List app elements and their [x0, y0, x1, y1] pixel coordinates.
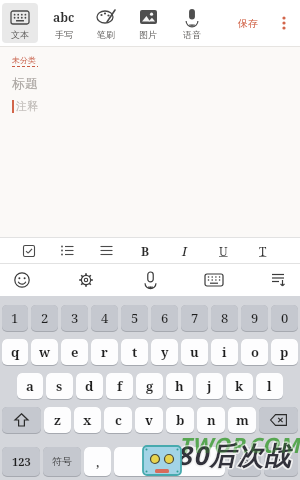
staticText: 6 — [161, 309, 169, 327]
button[interactable]: 8 — [211, 305, 238, 331]
staticText: 8 — [221, 309, 229, 327]
button[interactable] — [48, 238, 87, 263]
staticText: abc — [53, 9, 75, 25]
button[interactable]: q — [2, 339, 28, 365]
button[interactable]: 5 — [121, 305, 148, 331]
staticText: g — [146, 377, 154, 395]
staticText: y — [161, 343, 169, 361]
button[interactable]: 2 — [31, 305, 58, 331]
button[interactable] — [114, 447, 225, 476]
button[interactable] — [10, 238, 48, 263]
button[interactable]: s — [46, 373, 73, 399]
staticText: x — [83, 411, 92, 429]
staticText: 语音 — [183, 29, 201, 40]
staticText: 保存 — [238, 17, 258, 30]
button[interactable]: 保存 — [238, 17, 258, 30]
button[interactable]: t — [121, 339, 148, 365]
button[interactable]: 3 — [61, 305, 88, 331]
button[interactable]: f — [106, 373, 133, 399]
staticText: h — [175, 377, 184, 395]
button[interactable]: abc — [46, 3, 82, 43]
staticText: 1 — [11, 309, 19, 327]
button[interactable]: m — [228, 407, 256, 433]
button[interactable]: n — [197, 407, 225, 433]
button[interactable]: , — [84, 447, 111, 476]
button[interactable] — [70, 264, 102, 296]
staticText: d — [85, 377, 94, 395]
staticText: 文本 — [11, 29, 29, 40]
button[interactable]: o — [241, 339, 268, 365]
staticText: b — [176, 411, 185, 429]
staticText: 9 — [251, 309, 259, 327]
button[interactable] — [264, 447, 298, 476]
button[interactable]: p — [271, 339, 298, 365]
button[interactable]: 文本 — [2, 3, 38, 43]
button[interactable] — [259, 407, 298, 433]
button[interactable]: w — [31, 339, 58, 365]
button[interactable]: x — [74, 407, 101, 433]
button[interactable]: T — [243, 238, 282, 263]
button[interactable]: 语音 — [174, 3, 210, 43]
button[interactable]: g — [136, 373, 163, 399]
staticText: 0 — [281, 309, 289, 327]
button[interactable]: v — [135, 407, 163, 433]
button[interactable]: z — [44, 407, 71, 433]
staticText: j — [207, 377, 212, 395]
staticText: U — [219, 243, 228, 259]
button[interactable] — [2, 407, 41, 433]
staticText: c — [115, 411, 122, 429]
button[interactable]: 9 — [241, 305, 268, 331]
staticText: w — [39, 343, 51, 361]
staticText: 未分类 — [12, 55, 36, 65]
button[interactable]: h — [166, 373, 193, 399]
button[interactable]: 123 — [2, 447, 40, 476]
staticText: 英 — [240, 455, 250, 468]
staticText: f — [117, 377, 123, 395]
button[interactable]: i — [211, 339, 238, 365]
button[interactable]: b — [166, 407, 194, 433]
button[interactable]: e — [61, 339, 88, 365]
button[interactable]: 4 — [91, 305, 118, 331]
staticText: , — [96, 454, 100, 470]
staticText: l — [267, 377, 272, 395]
button[interactable]: 6 — [151, 305, 178, 331]
button[interactable] — [6, 264, 38, 296]
staticText: t — [132, 343, 138, 361]
button[interactable]: r — [91, 339, 118, 365]
button[interactable]: d — [76, 373, 103, 399]
button[interactable]: k — [226, 373, 253, 399]
staticText: 符号 — [52, 455, 72, 468]
staticText: z — [54, 411, 61, 429]
staticText: a — [26, 377, 34, 395]
button[interactable]: 0 — [271, 305, 298, 331]
staticText: 注释 — [16, 99, 38, 113]
button[interactable]: I — [165, 238, 204, 263]
button[interactable]: j — [196, 373, 223, 399]
button[interactable] — [262, 264, 294, 296]
button[interactable]: c — [104, 407, 132, 433]
staticText: 4 — [101, 309, 109, 327]
button[interactable]: 图片 — [130, 3, 166, 43]
button[interactable]: B — [126, 238, 165, 263]
staticText: n — [207, 411, 216, 429]
staticText: 手写 — [55, 29, 73, 40]
button[interactable]: l — [256, 373, 283, 399]
button[interactable]: 1 — [2, 305, 28, 331]
staticText: 标题 — [12, 75, 38, 91]
button[interactable]: 英 — [228, 447, 261, 476]
button[interactable] — [198, 264, 230, 296]
button[interactable]: y — [151, 339, 178, 365]
button[interactable] — [87, 238, 126, 263]
button[interactable]: 7 — [181, 305, 208, 331]
button[interactable]: u — [181, 339, 208, 365]
staticText: 2 — [41, 309, 49, 327]
staticText: r — [101, 343, 108, 361]
staticText: p — [280, 343, 289, 361]
button[interactable] — [282, 16, 286, 30]
staticText: 3 — [71, 309, 79, 327]
button[interactable]: 符号 — [43, 447, 81, 476]
button[interactable]: a — [17, 373, 43, 399]
button[interactable]: 笔刷 — [88, 3, 124, 43]
button[interactable]: U — [204, 238, 243, 263]
button[interactable] — [134, 264, 166, 296]
